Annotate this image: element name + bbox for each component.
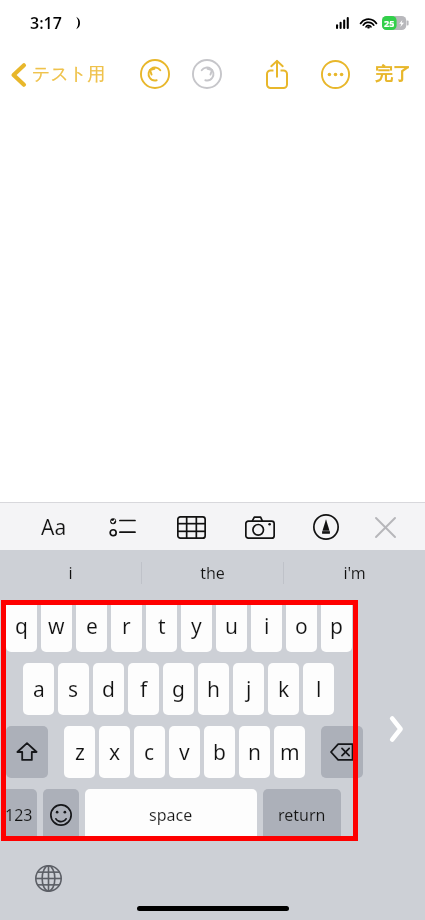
staticText: p [330, 612, 343, 641]
button[interactable]: Next [382, 715, 410, 743]
staticText: q [15, 612, 28, 641]
button[interactable]: return [263, 789, 341, 841]
staticText: Aa [41, 513, 67, 542]
staticText: r [122, 612, 131, 641]
staticText: o [295, 612, 308, 641]
staticText: l [316, 675, 322, 704]
staticText: m [280, 738, 300, 767]
button[interactable]: s [58, 663, 89, 715]
staticText: space [149, 804, 193, 826]
staticText: 3:17 [30, 12, 62, 34]
staticText: b [213, 738, 226, 767]
button[interactable]: f [128, 663, 159, 715]
button[interactable]: Aa [34, 507, 74, 547]
button[interactable]: i [251, 600, 282, 652]
staticText: return [278, 804, 326, 826]
staticText: s [68, 675, 79, 704]
staticText: t [158, 612, 166, 641]
staticText: d [102, 675, 115, 704]
button[interactable]: Close keyboard [365, 507, 405, 547]
button[interactable]: i [0, 550, 141, 596]
button[interactable]: v [169, 726, 200, 778]
staticText: i'm [343, 562, 366, 584]
staticText: テスト用 [32, 63, 106, 86]
button[interactable]: g [163, 663, 194, 715]
button[interactable]: Table [170, 506, 212, 548]
staticText: y [191, 612, 202, 641]
button[interactable]: n [239, 726, 270, 778]
button[interactable]: d [93, 663, 124, 715]
button[interactable]: Undo [137, 56, 173, 92]
staticText: i [264, 612, 270, 641]
button[interactable]: x [99, 726, 130, 778]
button[interactable]: Markup [305, 506, 347, 548]
button[interactable]: z [64, 726, 95, 778]
button[interactable]: Checklist [102, 507, 142, 547]
button[interactable]: j [233, 663, 264, 715]
button[interactable]: e [76, 600, 107, 652]
button[interactable]: r [111, 600, 142, 652]
staticText: 25 [384, 17, 395, 29]
button[interactable]: Redo [189, 56, 225, 92]
staticText: c [144, 738, 155, 767]
staticText: v [179, 738, 190, 767]
button[interactable]: y [181, 600, 212, 652]
button[interactable]: u [216, 600, 247, 652]
button[interactable]: space [85, 789, 257, 841]
button[interactable]: c [134, 726, 165, 778]
button[interactable]: the [142, 550, 283, 596]
button[interactable]: o [286, 600, 317, 652]
button[interactable]: 123 [1, 789, 37, 841]
staticText: j [246, 675, 252, 704]
staticText: u [225, 612, 238, 641]
button[interactable]: b [204, 726, 235, 778]
staticText: n [248, 738, 261, 767]
button[interactable]: m [274, 726, 305, 778]
button[interactable]: a [23, 663, 54, 715]
button[interactable]: Camera [239, 506, 281, 548]
button[interactable]: 完了 [369, 57, 417, 92]
staticText: g [172, 675, 185, 704]
staticText: e [86, 612, 98, 641]
staticText: 123 [5, 804, 33, 826]
button[interactable]: Backspace [321, 726, 363, 778]
staticText: x [109, 738, 121, 767]
button[interactable]: l [303, 663, 334, 715]
staticText: 完了 [375, 63, 411, 86]
button[interactable]: t [146, 600, 177, 652]
button[interactable]: Shift [6, 726, 48, 778]
staticText: the [200, 562, 225, 584]
button[interactable]: p [321, 600, 352, 652]
button[interactable]: Emoji [43, 789, 79, 841]
staticText: i [68, 562, 73, 584]
button[interactable]: h [198, 663, 229, 715]
button[interactable]: i'm [284, 550, 425, 596]
staticText: h [207, 675, 220, 704]
button[interactable]: More [316, 55, 354, 93]
staticText: z [75, 738, 85, 767]
button[interactable]: Share [258, 55, 296, 93]
staticText: a [33, 675, 45, 704]
staticText: f [140, 675, 148, 704]
button[interactable]: q [6, 600, 37, 652]
button[interactable]: w [41, 600, 72, 652]
staticText: k [278, 675, 290, 704]
button[interactable]: テスト用 [6, 57, 112, 92]
button[interactable]: Change keyboard [33, 863, 63, 893]
button[interactable]: k [268, 663, 299, 715]
staticText: w [48, 612, 65, 641]
